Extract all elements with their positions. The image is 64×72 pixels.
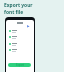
button[interactable]	[6, 29, 34, 34]
staticText: font file	[4, 9, 24, 16]
staticText: Export	[16, 63, 24, 67]
button[interactable]	[6, 42, 34, 47]
button[interactable]: Export	[8, 63, 31, 67]
button[interactable]	[6, 48, 34, 53]
other: Pointer	[27, 25, 30, 28]
staticText: Export your	[4, 2, 33, 9]
button[interactable]	[6, 35, 34, 40]
